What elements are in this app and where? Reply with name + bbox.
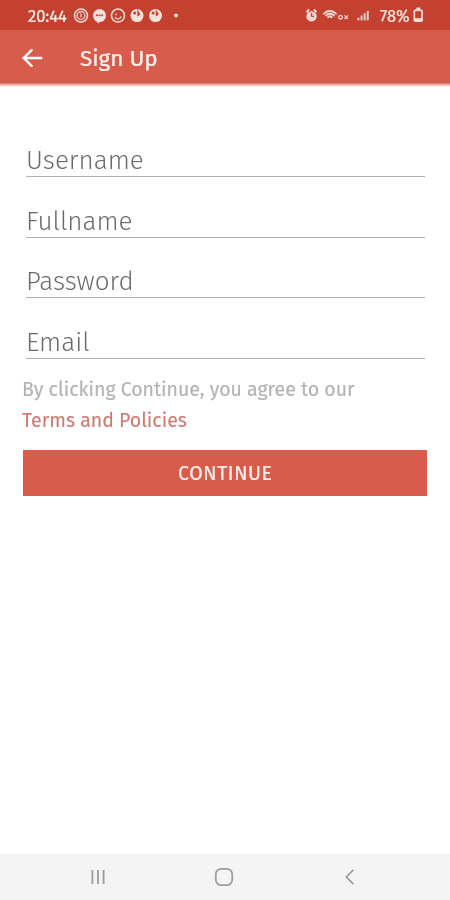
staticText: 20:44: [28, 7, 67, 27]
button[interactable]: Back: [326, 854, 374, 900]
staticText: By clicking Continue, you agree to our: [22, 378, 355, 401]
staticText: Username: [26, 145, 144, 176]
button[interactable]: Password: [26, 255, 425, 299]
staticText: Email: [26, 327, 90, 358]
button[interactable]: Username: [26, 134, 425, 178]
staticText: Terms and Policies: [22, 409, 187, 432]
button[interactable]: Recent apps: [74, 854, 122, 900]
button[interactable]: Home: [200, 854, 248, 900]
button[interactable]: Terms and Policies: [22, 409, 187, 432]
staticText: 78%: [380, 7, 410, 27]
staticText: Password: [26, 266, 134, 297]
staticText: CONTINUE: [178, 462, 273, 485]
button[interactable]: CONTINUE: [23, 450, 427, 496]
staticText: Fullname: [26, 206, 133, 237]
button[interactable]: Back: [8, 34, 56, 82]
button[interactable]: Fullname: [26, 195, 425, 239]
button[interactable]: Email: [26, 316, 425, 360]
staticText: Sign Up: [80, 45, 158, 72]
